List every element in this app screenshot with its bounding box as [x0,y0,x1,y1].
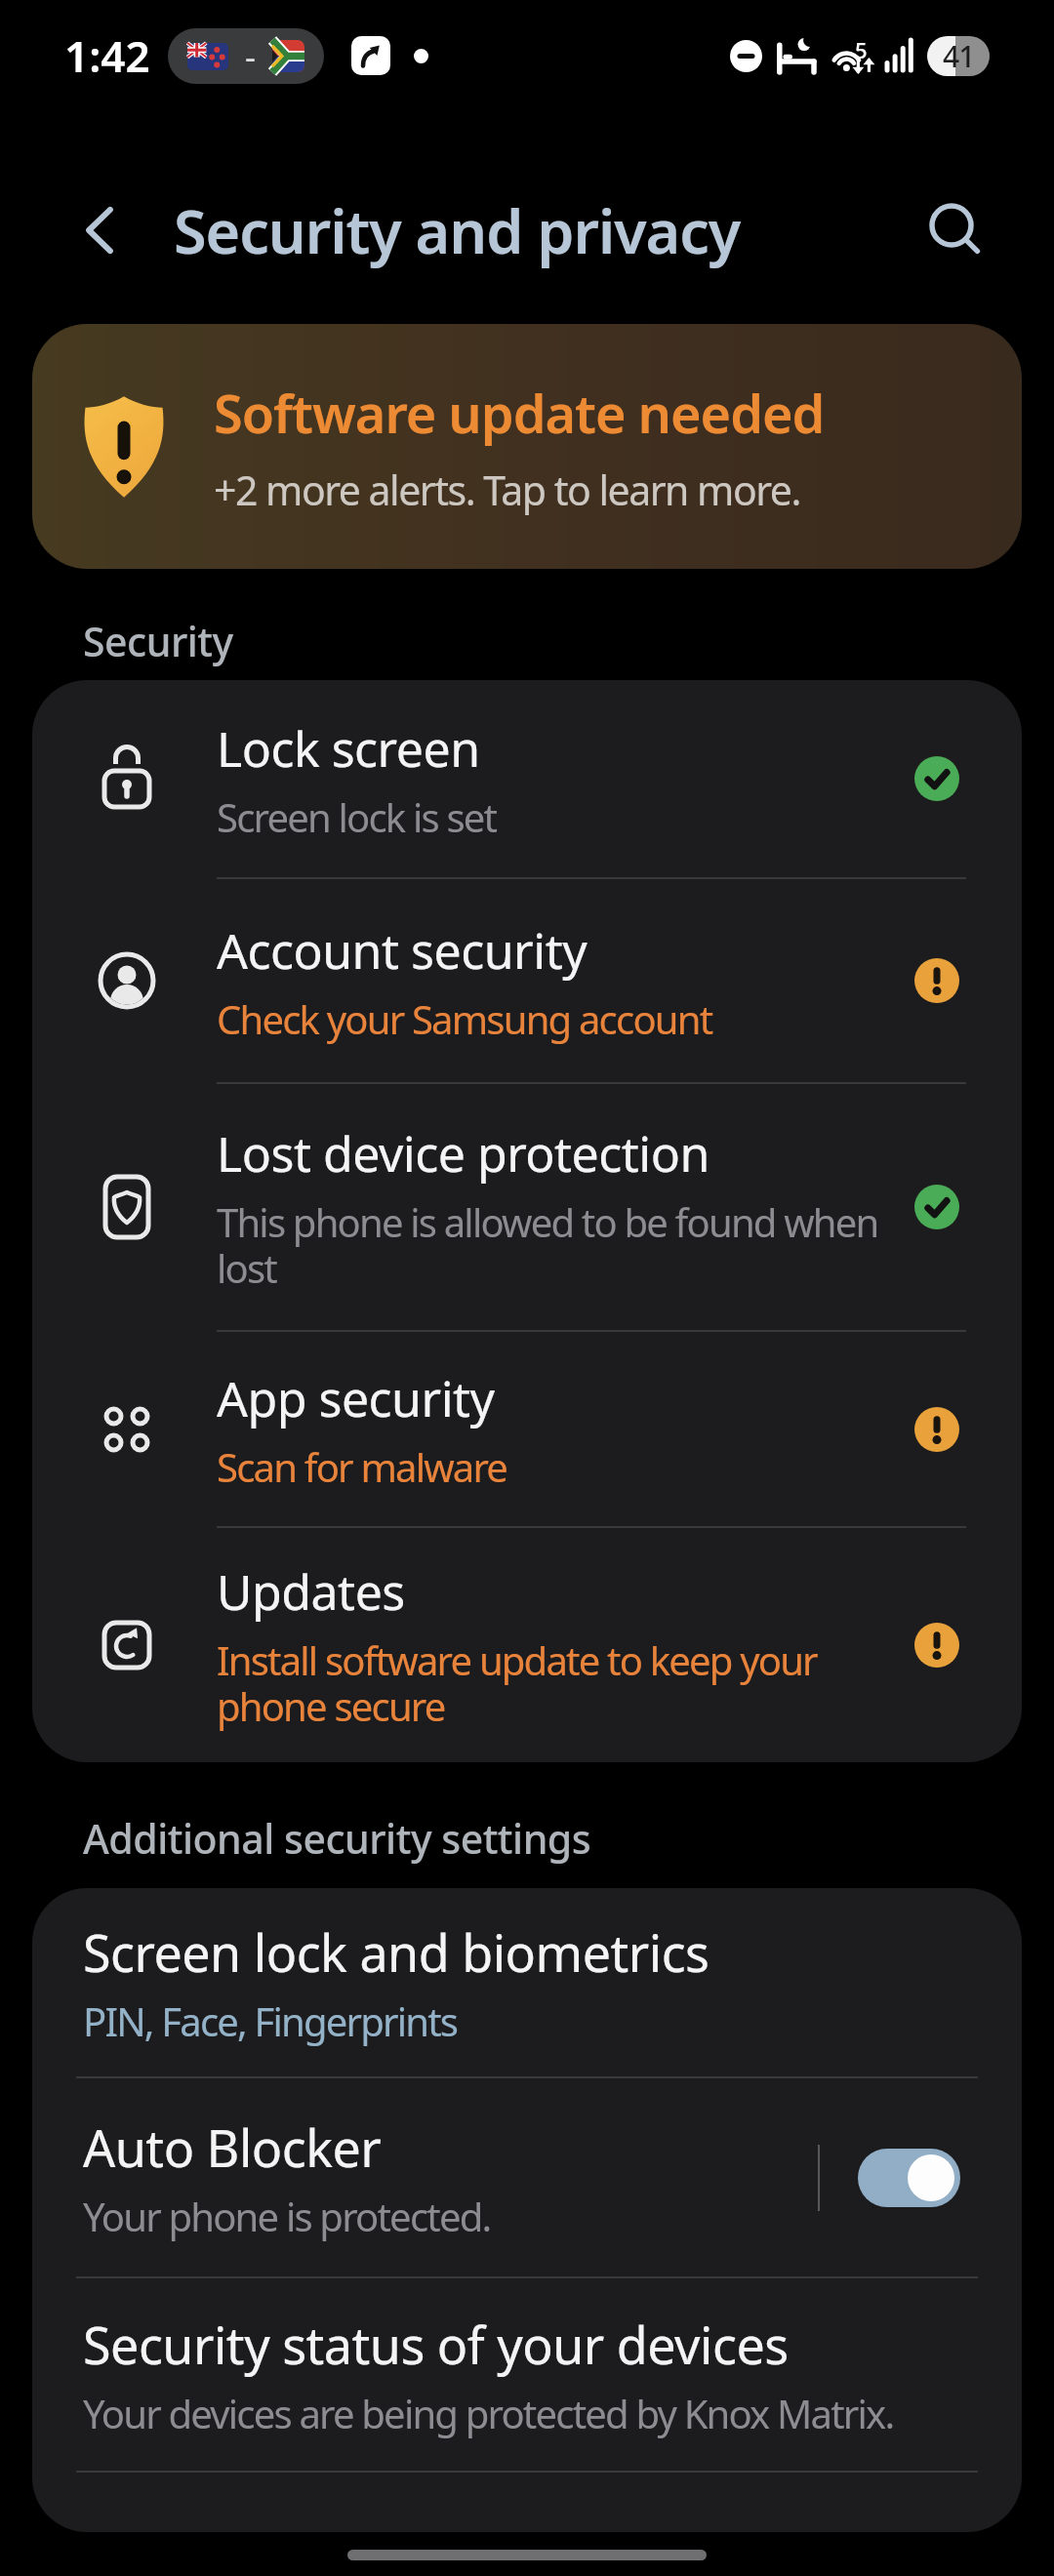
staticText: Install software update to keep your pho… [217,1633,817,1733]
staticText: Your phone is protected. [83,2190,491,2242]
staticText: Lock screen [217,715,480,782]
staticText: Screen lock is set [217,790,497,843]
staticText: Security [83,614,233,668]
staticText: Updates [217,1558,405,1625]
staticText: Security status of your devices [83,2310,789,2379]
staticText: This phone is allowed to be found when l… [217,1195,878,1295]
staticText: +2 more alerts. Tap to learn more. [214,463,800,517]
button[interactable]: Account security [32,879,1022,1082]
staticText: Your devices are being protected by Knox… [83,2387,894,2439]
button[interactable]: Lost device protection [32,1084,1022,1330]
staticText: Scan for malware [217,1440,507,1493]
staticText: Screen lock and biometrics [83,1917,709,1987]
staticText: Account security [217,917,588,984]
staticText: - [245,34,256,79]
button[interactable]: Software update needed [32,324,1022,569]
staticText: Additional security settings [83,1811,591,1866]
button[interactable]: Security status of your devices [32,2278,1022,2471]
button[interactable] [858,2149,960,2207]
staticText: Lost device protection [217,1120,709,1187]
staticText: Check your Samsung account [217,992,712,1045]
button[interactable]: Screen lock and biometrics [32,1888,1022,2076]
button[interactable]: Updates [32,1528,1022,1762]
button[interactable]: Auto Blocker [32,2078,1022,2276]
button[interactable]: App security [32,1332,1022,1526]
staticText: Security and privacy [174,190,741,271]
staticText: PIN, Face, Fingerprints [83,1994,458,2047]
staticText: 41 [943,36,975,76]
button[interactable]: Lock screen [32,680,1022,877]
button[interactable] [925,199,988,262]
staticText: 5 [855,35,868,64]
staticText: Auto Blocker [83,2113,382,2182]
staticText: 1:42 [64,26,150,85]
button[interactable] [70,201,129,260]
staticText: Software update needed [214,377,825,449]
staticText: App security [217,1365,495,1431]
